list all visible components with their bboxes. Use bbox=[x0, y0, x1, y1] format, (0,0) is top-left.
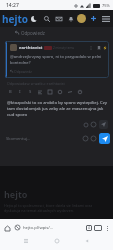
button[interactable]: Add post bbox=[88, 13, 99, 24]
button[interactable]: Format 5 bbox=[57, 89, 63, 95]
staticText: 2 minuty temu bbox=[53, 46, 75, 50]
staticText: @ktozpolski to co zrobilo by sporo wyste… bbox=[7, 99, 108, 117]
staticText: Odpowiedz bbox=[14, 69, 32, 74]
button[interactable]: Recent apps bbox=[21, 236, 31, 246]
button[interactable]: Reader mode bbox=[94, 225, 102, 231]
staticText: 4 bbox=[88, 226, 90, 230]
button[interactable]: Attach image bbox=[90, 121, 97, 128]
button[interactable]: Format 7 bbox=[77, 89, 83, 95]
button[interactable]: Format 2 bbox=[27, 89, 33, 95]
button[interactable]: hejto bbox=[1, 12, 30, 26]
staticText: I bbox=[19, 89, 21, 95]
button[interactable]: Format 3 bbox=[37, 89, 43, 95]
staticText: Skomentuj... bbox=[6, 136, 31, 142]
staticText: S bbox=[29, 89, 32, 95]
button[interactable]: Profile bbox=[77, 14, 86, 23]
staticText: 14:27 bbox=[6, 2, 19, 9]
button[interactable]: Messages bbox=[53, 13, 64, 24]
staticText: Odpowiadasz w watku: earthtavist bbox=[7, 81, 65, 86]
staticText: Odpowiedz bbox=[21, 30, 45, 36]
button[interactable]: Boost bbox=[102, 45, 108, 51]
button[interactable]: Bookmark bbox=[96, 45, 102, 51]
button[interactable]: Format 6 bbox=[67, 89, 73, 95]
button[interactable]: Send comment bbox=[99, 133, 110, 144]
button[interactable]: Notifications bbox=[65, 13, 76, 24]
staticText: earthtavist bbox=[19, 45, 43, 51]
button[interactable]: Site info bbox=[13, 223, 22, 232]
staticText: @andrzejkrzywy sporo, ni to przypadalo w… bbox=[10, 54, 102, 66]
button[interactable]: Emoji bbox=[82, 135, 89, 142]
button[interactable]: Emoji bbox=[82, 121, 89, 128]
button[interactable]: earthtavist bbox=[5, 41, 109, 78]
button[interactable]: Menu bbox=[100, 13, 111, 24]
button[interactable]: Format 1 bbox=[17, 89, 23, 95]
button[interactable]: Format 4 bbox=[47, 89, 53, 95]
staticText: hejto.pl/wpis/125348 bbox=[23, 225, 54, 231]
button[interactable]: Search bbox=[41, 13, 52, 24]
staticText: hejto bbox=[4, 188, 28, 200]
button[interactable]: Attach image bbox=[90, 135, 97, 142]
button[interactable]: Home bbox=[2, 223, 12, 233]
button[interactable]: Odpowiedz bbox=[10, 69, 32, 74]
button[interactable]: Tabs bbox=[86, 225, 92, 231]
staticText: B bbox=[9, 89, 12, 95]
button[interactable]: Home bbox=[52, 236, 62, 246]
button[interactable]: Dark mode bbox=[28, 13, 39, 24]
staticText: hejto bbox=[2, 12, 29, 26]
button[interactable]: Send reply bbox=[99, 120, 108, 129]
button[interactable]: Back bbox=[82, 236, 92, 246]
button[interactable]: Format 0 bbox=[7, 89, 13, 95]
staticText: 75% bbox=[102, 3, 110, 8]
button[interactable]: Odpowiedz bbox=[15, 30, 45, 36]
staticText: Hejto.pl to spolecznosci, ktore dziela s… bbox=[4, 203, 109, 213]
button[interactable]: More options bbox=[103, 224, 111, 232]
button[interactable]: More bbox=[88, 45, 94, 51]
